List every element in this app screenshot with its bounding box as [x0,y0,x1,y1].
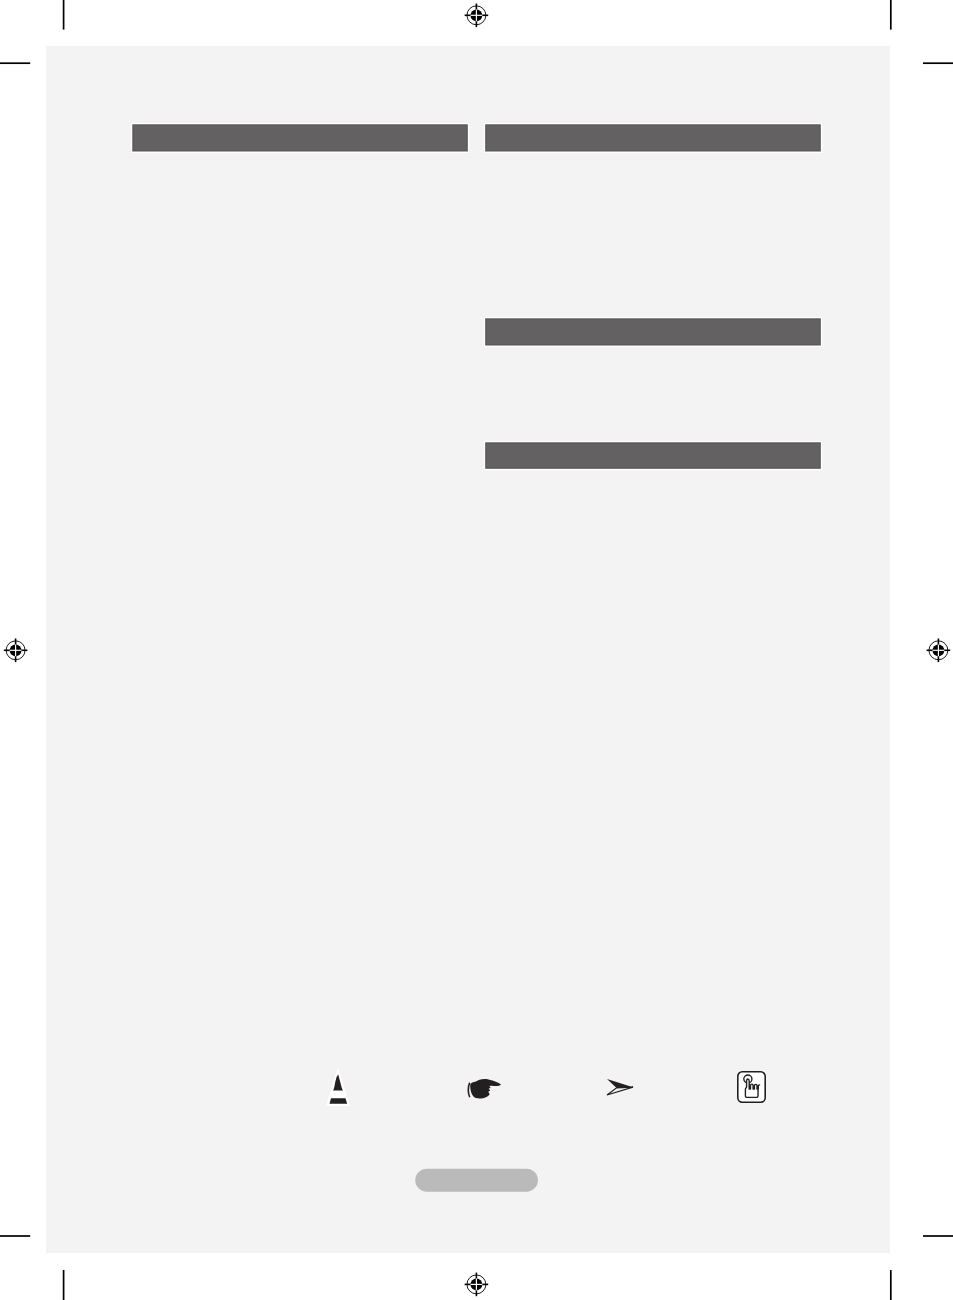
button[interactable]: Warning [318,1060,358,1112]
button[interactable]: Heading band one [132,124,468,152]
button[interactable]: Continue [415,1169,538,1191]
button[interactable]: Heading band two [485,124,821,152]
button[interactable]: Send [601,1072,639,1102]
button[interactable]: Pointer [461,1072,507,1104]
button[interactable]: Heading band four [485,442,821,469]
button[interactable]: Touch [733,1067,770,1107]
button[interactable]: Heading band three [485,318,821,346]
